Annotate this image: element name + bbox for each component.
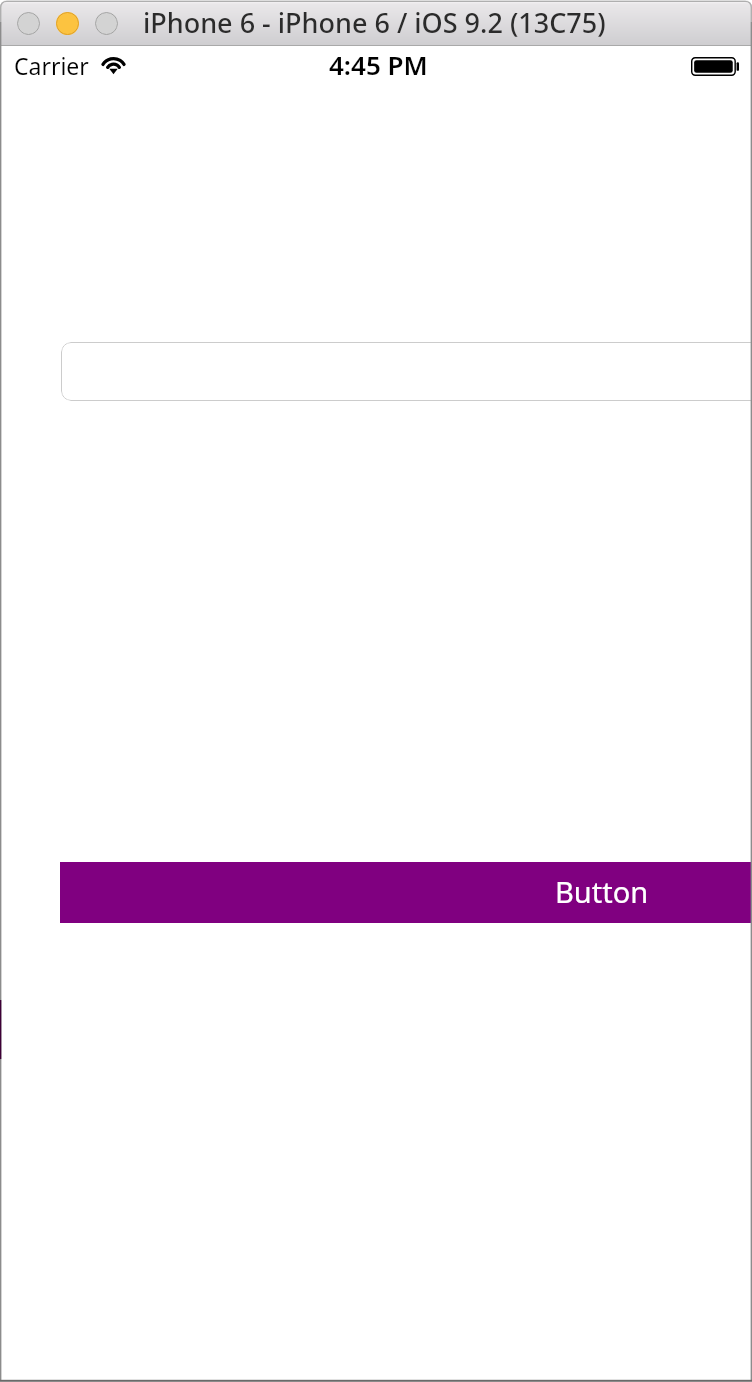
button[interactable]: Button bbox=[60, 862, 752, 923]
staticText: iPhone 6 - iPhone 6 / iOS 9.2 (13C75) bbox=[143, 4, 606, 41]
staticText: 4:45 PM bbox=[329, 47, 428, 82]
other: Battery full bbox=[691, 57, 739, 76]
button[interactable]: Close window bbox=[17, 12, 40, 35]
button[interactable] bbox=[61, 342, 752, 401]
other: Wi-Fi signal bbox=[100, 51, 127, 71]
button[interactable] bbox=[0, 1000, 1, 1060]
staticText: Carrier bbox=[14, 50, 89, 81]
staticText: Button bbox=[555, 872, 649, 911]
button[interactable]: Zoom window bbox=[95, 12, 118, 35]
button[interactable]: Close window bbox=[0, 0, 752, 46]
button[interactable]: Minimize window bbox=[56, 12, 79, 35]
